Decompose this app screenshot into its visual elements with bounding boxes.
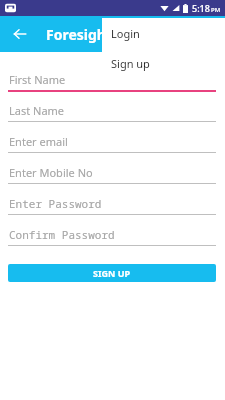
staticText: Enter email [9,134,68,149]
staticText: SIGN UP [93,267,131,279]
staticText: First Name [9,72,66,87]
staticText: Confirm Password [9,227,115,242]
staticText: Enter Mobile No [9,165,93,180]
button[interactable]: Sign up [102,48,225,78]
staticText: Last Name [9,103,65,118]
button[interactable]: Enter Password [0,192,225,223]
button[interactable]: Enter Mobile No [0,161,225,192]
button[interactable]: Confirm Password [0,223,225,254]
staticText: PM [211,6,221,14]
staticText: Enter Password [9,196,102,211]
staticText: Sign up [111,56,150,71]
button[interactable]: SIGN UP [8,264,216,282]
button[interactable]: Back [8,22,32,46]
button[interactable]: Last Name [0,99,225,130]
staticText: Foresight [46,25,113,44]
staticText: Login [111,26,140,41]
button[interactable]: Enter email [0,130,225,161]
button[interactable]: First Name [0,68,225,99]
button[interactable]: Login [102,18,225,48]
staticText: 5:18 [192,2,210,14]
